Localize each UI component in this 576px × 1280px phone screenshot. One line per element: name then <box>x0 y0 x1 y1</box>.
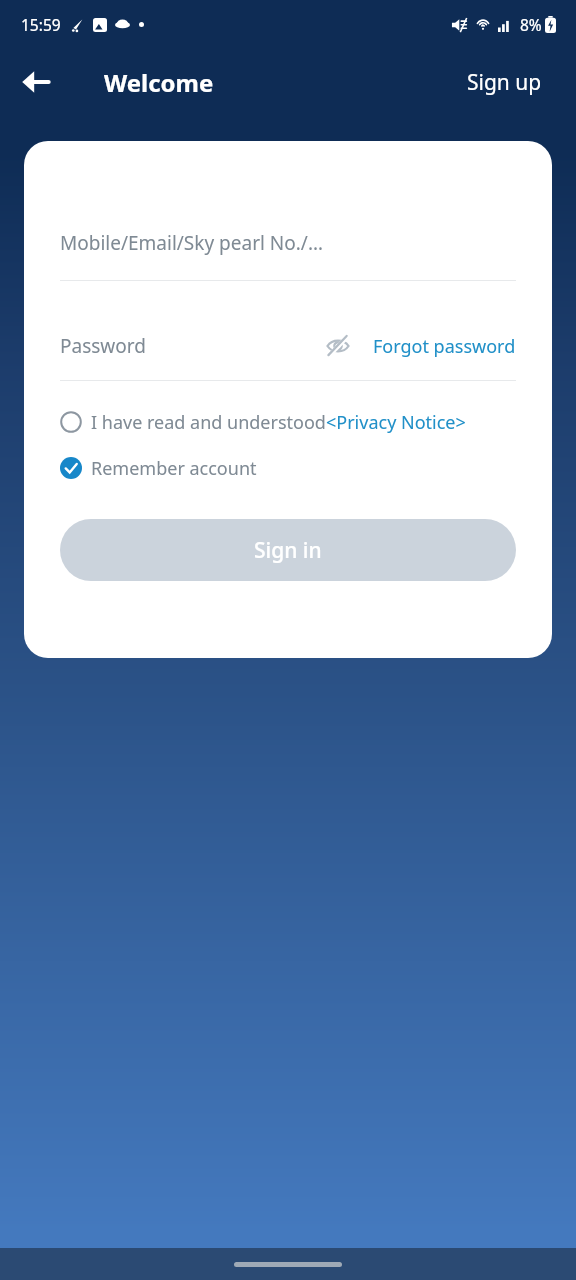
staticText: 8% <box>520 14 542 35</box>
button[interactable]: <Privacy Notice> <box>326 410 466 435</box>
button[interactable]: Back <box>10 56 62 108</box>
staticText: Forgot password <box>373 334 516 359</box>
staticText: Mobile/Email/Sky pearl No./… <box>60 230 323 256</box>
button[interactable]: Sign in <box>60 519 516 581</box>
staticText: Remember account <box>91 456 257 481</box>
button[interactable]: Password <box>60 333 321 359</box>
button[interactable]: Mobile/Email/Sky pearl No./… <box>60 226 516 260</box>
button[interactable]: Forgot password <box>373 334 516 359</box>
staticText: I have read and understood <box>91 410 326 435</box>
staticText: Welcome <box>104 66 214 99</box>
button[interactable]: Sign up <box>461 60 548 105</box>
button[interactable]: Show password <box>321 329 355 363</box>
button[interactable]: Remember account <box>60 449 516 487</box>
staticText: Sign up <box>467 68 542 97</box>
staticText: Password <box>60 333 146 359</box>
button[interactable]: I have read and understood <box>60 403 516 441</box>
staticText: 15:59 <box>21 14 61 35</box>
staticText: Sign in <box>254 536 322 565</box>
